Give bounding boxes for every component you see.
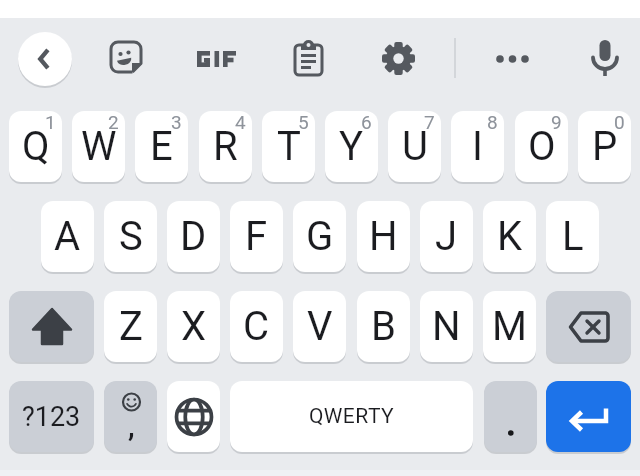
button[interactable]: L	[546, 201, 599, 272]
staticText: M	[492, 303, 527, 350]
button[interactable]	[9, 291, 94, 362]
staticText: O	[528, 123, 556, 170]
button[interactable]	[186, 38, 246, 80]
button[interactable]	[293, 40, 325, 76]
button[interactable]: F	[230, 201, 283, 272]
button[interactable]: U	[388, 111, 441, 182]
staticText: L	[562, 213, 584, 260]
staticText: Z	[119, 303, 143, 350]
button[interactable]	[381, 41, 416, 76]
staticText: V	[307, 303, 333, 350]
staticText: 3	[171, 111, 182, 133]
button[interactable]	[492, 34, 533, 84]
button[interactable]	[546, 291, 631, 362]
staticText: ,	[128, 408, 135, 443]
staticText: B	[371, 303, 396, 350]
button[interactable]	[108, 40, 144, 76]
button[interactable]	[546, 381, 631, 452]
button[interactable]: Y	[325, 111, 378, 182]
button[interactable]: O	[515, 111, 568, 182]
staticText: T	[277, 123, 301, 170]
button[interactable]: V	[293, 291, 346, 362]
staticText: N	[432, 303, 461, 350]
button[interactable]: B	[357, 291, 410, 362]
button[interactable]: D	[167, 201, 220, 272]
staticText: 8	[487, 111, 498, 133]
button[interactable]	[484, 381, 537, 452]
staticText: 4	[235, 111, 246, 133]
staticText: G	[306, 213, 334, 260]
button[interactable]: M	[483, 291, 536, 362]
button[interactable]	[167, 381, 220, 452]
staticText: X	[181, 303, 207, 350]
button[interactable]: T	[262, 111, 315, 182]
button[interactable]: R	[199, 111, 252, 182]
button[interactable]: J	[420, 201, 473, 272]
staticText: W	[81, 123, 117, 170]
staticText: 9	[551, 111, 562, 133]
button[interactable]	[18, 32, 72, 86]
staticText: 2	[108, 111, 119, 133]
button[interactable]: S	[104, 201, 157, 272]
staticText: K	[497, 213, 523, 260]
button[interactable]: ?123	[9, 381, 94, 452]
staticText: 0	[614, 111, 625, 133]
button[interactable]: H	[357, 201, 410, 272]
staticText: H	[369, 213, 398, 260]
button[interactable]: K	[483, 201, 536, 272]
staticText: 5	[298, 111, 309, 133]
staticText: Q	[22, 123, 50, 170]
button[interactable]: P	[578, 111, 631, 182]
staticText: 1	[45, 111, 56, 133]
staticText: 6	[361, 111, 372, 133]
button[interactable]: Q	[9, 111, 62, 182]
staticText: F	[245, 213, 268, 260]
staticText: A	[54, 213, 81, 260]
staticText: S	[119, 213, 143, 260]
staticText: P	[592, 123, 618, 170]
button[interactable]: E	[135, 111, 188, 182]
button[interactable]: C	[230, 291, 283, 362]
staticText: ?123	[22, 401, 81, 433]
staticText: U	[402, 123, 428, 170]
staticText: E	[150, 123, 173, 170]
button[interactable]: G	[293, 201, 346, 272]
button[interactable]: X	[167, 291, 220, 362]
staticText: 7	[424, 111, 435, 133]
button[interactable]: ,	[104, 381, 157, 452]
staticText: D	[180, 213, 207, 260]
button[interactable]: QWERTY	[230, 381, 473, 452]
button[interactable]: W	[72, 111, 125, 182]
staticText: Y	[339, 123, 364, 170]
staticText: R	[213, 123, 238, 170]
staticText: J	[435, 213, 458, 260]
button[interactable]: I	[451, 111, 504, 182]
button[interactable]: A	[41, 201, 94, 272]
button[interactable]	[587, 38, 623, 80]
button[interactable]: Z	[104, 291, 157, 362]
staticText: C	[243, 303, 270, 350]
staticText: QWERTY	[309, 404, 395, 429]
staticText: I	[472, 123, 483, 170]
button[interactable]: N	[420, 291, 473, 362]
